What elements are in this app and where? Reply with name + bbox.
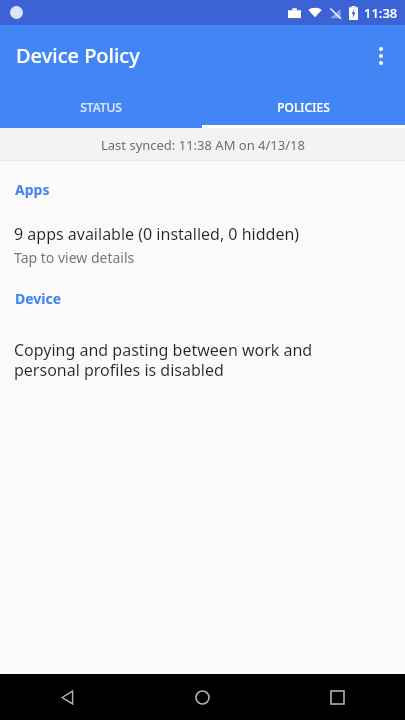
button[interactable]: STATUS xyxy=(0,86,202,128)
staticText: 11:38 xyxy=(364,4,398,22)
button[interactable]: POLICIES xyxy=(202,86,405,128)
staticText: Device Policy xyxy=(16,42,140,69)
staticText: Copying and pasting between work and per… xyxy=(14,339,361,380)
staticText: Apps xyxy=(15,180,50,199)
button[interactable]: 9 apps available (0 installed, 0 hidden) xyxy=(0,199,405,273)
button[interactable]: Copying and pasting between work and per… xyxy=(0,308,405,380)
staticText: Last synced: 11:38 AM on 4/13/18 xyxy=(101,136,305,154)
staticText: 9 apps available (0 installed, 0 hidden) xyxy=(14,223,300,245)
staticText: POLICIES xyxy=(277,99,330,115)
button[interactable]: More options xyxy=(357,32,405,80)
button[interactable]: Home xyxy=(135,674,270,720)
staticText: STATUS xyxy=(80,99,122,115)
button[interactable]: Back xyxy=(0,674,135,720)
button[interactable]: Recent apps xyxy=(270,674,405,720)
staticText: Device xyxy=(15,289,62,308)
staticText: Tap to view details xyxy=(14,248,135,267)
